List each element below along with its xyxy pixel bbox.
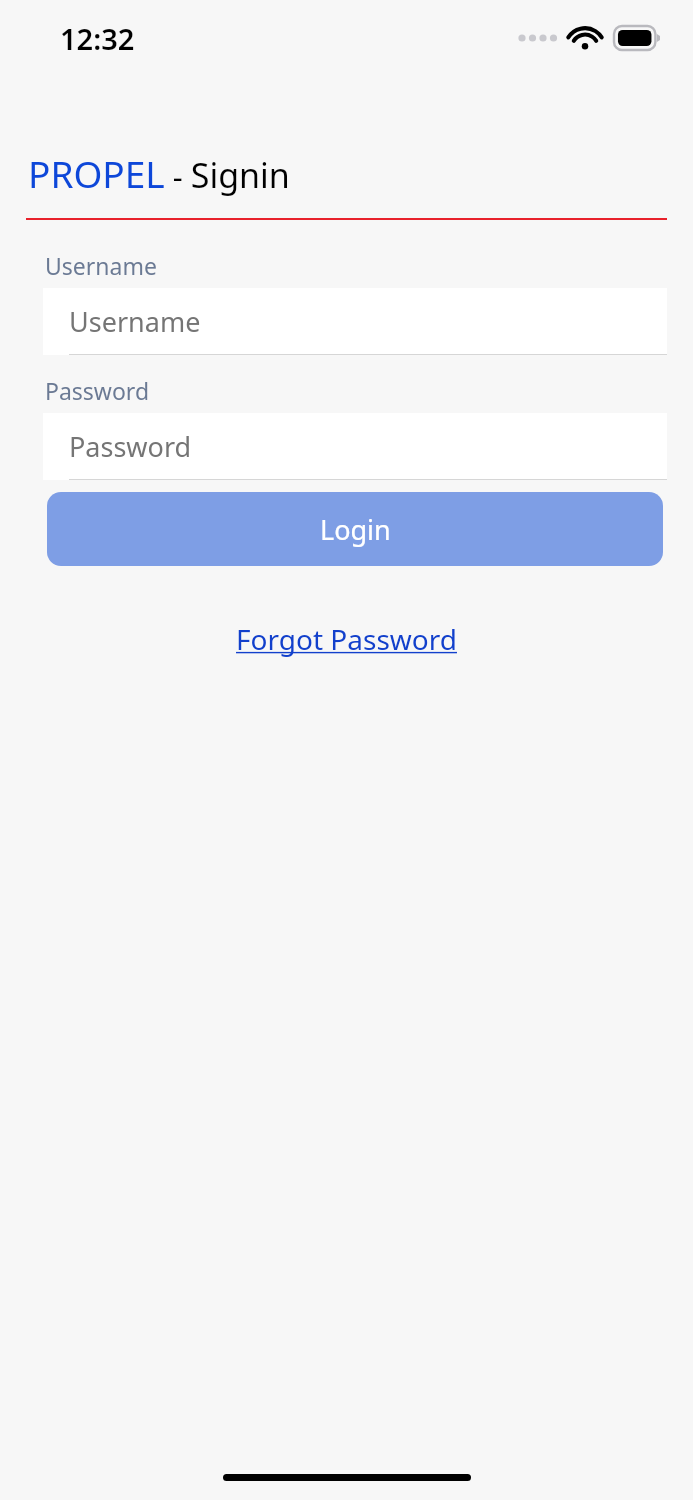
button[interactable]: Password (43, 413, 667, 480)
staticText: 12:32 (60, 19, 135, 58)
staticText: PROPEL - Signin (28, 148, 290, 198)
button[interactable]: Username (43, 288, 667, 355)
staticText: Forgot Password (236, 620, 457, 658)
staticText: Password (69, 428, 192, 465)
staticText: Login (320, 511, 391, 548)
button[interactable]: Login (47, 492, 663, 566)
staticText: Username (69, 303, 201, 340)
staticText: Username (45, 250, 157, 281)
button[interactable]: Forgot Password (228, 616, 465, 662)
staticText: Password (45, 375, 150, 406)
